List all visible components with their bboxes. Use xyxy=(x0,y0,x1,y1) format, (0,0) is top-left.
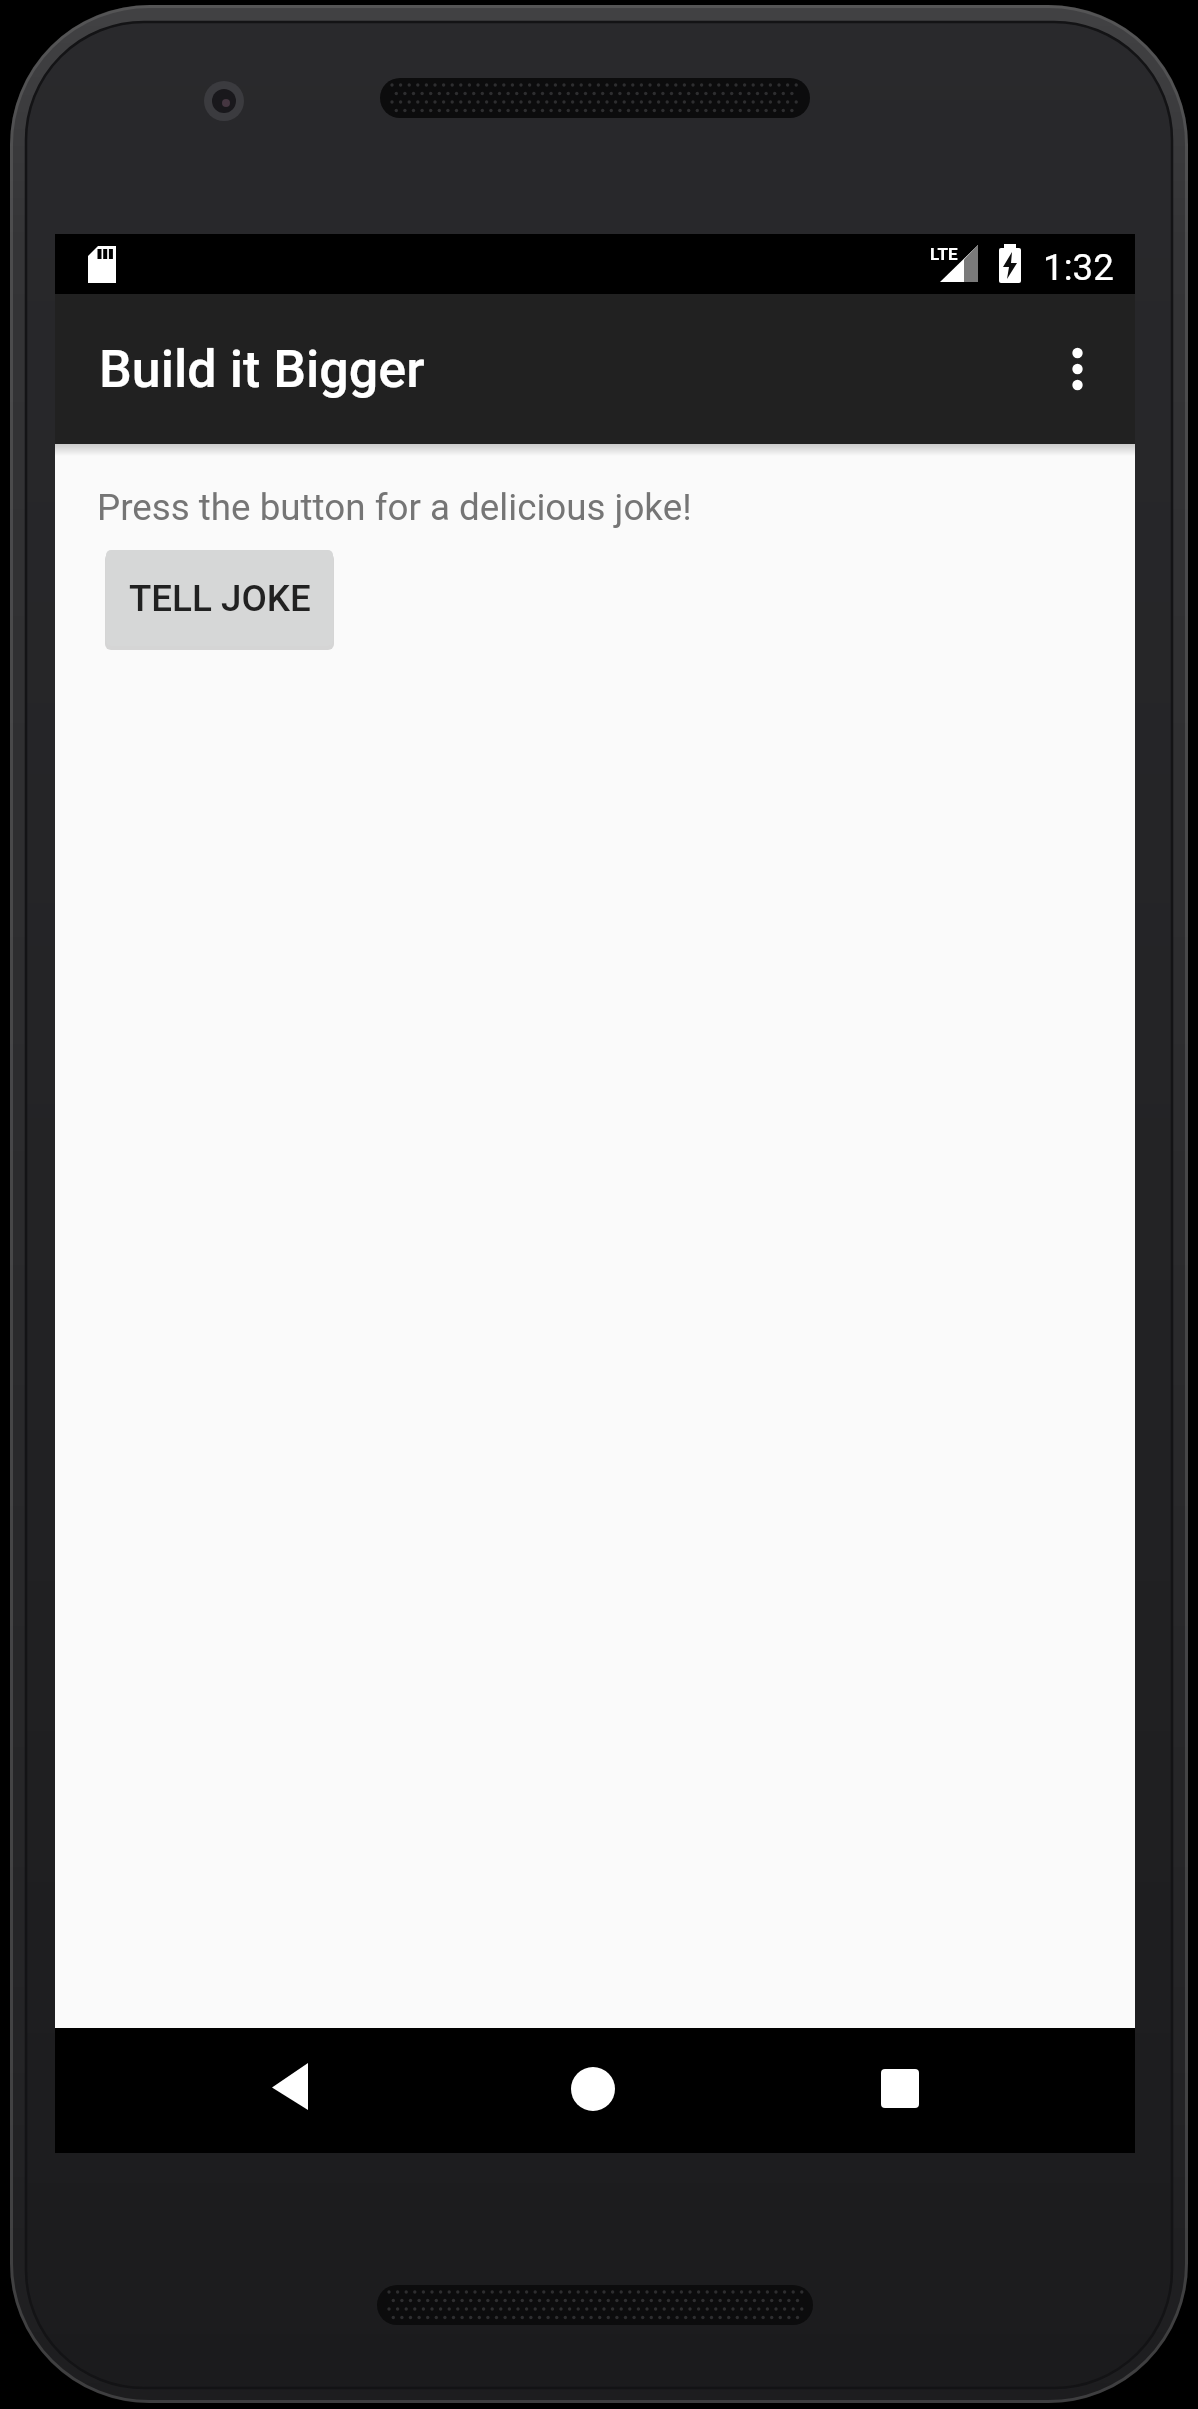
staticText: 1:32 xyxy=(1043,246,1114,289)
button[interactable] xyxy=(1019,294,1135,444)
staticText: LTE xyxy=(930,244,958,264)
button[interactable]: TELL JOKE xyxy=(106,550,333,646)
staticText: Build it Bigger xyxy=(99,339,425,400)
button[interactable] xyxy=(533,2028,653,2153)
staticText: Press the button for a delicious joke! xyxy=(97,486,692,529)
staticText: TELL JOKE xyxy=(129,577,311,620)
button[interactable] xyxy=(230,2028,350,2153)
button[interactable] xyxy=(840,2028,960,2153)
